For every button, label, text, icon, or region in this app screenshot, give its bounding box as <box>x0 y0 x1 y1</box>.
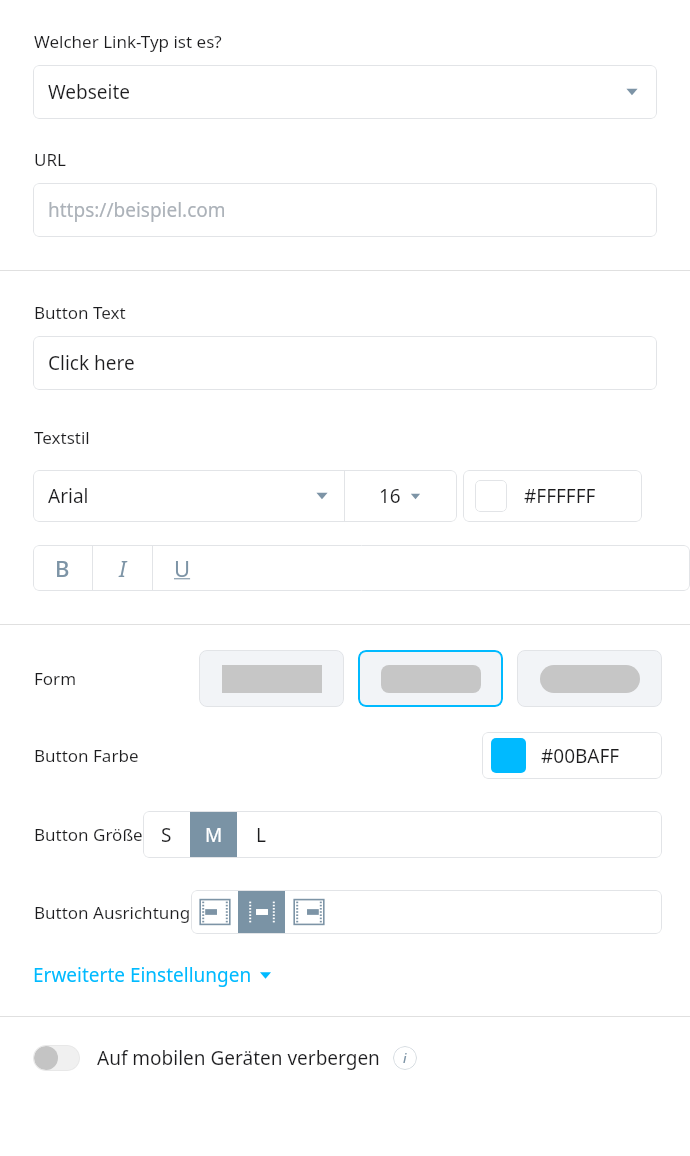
button[interactable]: Arial <box>33 470 344 522</box>
button[interactable]: I <box>93 545 152 591</box>
staticText: M <box>205 822 223 848</box>
staticText: Webseite <box>48 79 623 105</box>
staticText: Welcher Link-Typ ist es? <box>34 30 222 53</box>
button[interactable]: https://beispiel.com <box>33 183 657 237</box>
staticText: Button Farbe <box>34 744 139 767</box>
staticText: I <box>119 553 127 583</box>
button[interactable]: Webseite <box>33 65 657 119</box>
staticText: L <box>256 822 266 848</box>
staticText: https://beispiel.com <box>48 197 226 223</box>
staticText: B <box>55 553 70 583</box>
staticText: i <box>403 1049 407 1067</box>
button[interactable]: 16 <box>345 470 457 522</box>
button[interactable]: Ausrichtung 0 <box>191 890 238 934</box>
button[interactable]: Click here <box>33 336 657 390</box>
staticText: #FFFFFF <box>524 483 596 509</box>
staticText: Button Größe <box>34 823 143 846</box>
button[interactable]: Form 2 <box>517 650 662 707</box>
staticText: Arial <box>48 483 313 509</box>
staticText: Erweiterte Einstellungen <box>33 962 252 988</box>
button[interactable]: L <box>237 811 284 858</box>
button[interactable]: Form 0 <box>199 650 344 707</box>
staticText: Button Ausrichtung <box>34 901 191 924</box>
staticText: Form <box>34 667 77 690</box>
staticText: Auf mobilen Geräten verbergen <box>97 1045 380 1071</box>
button[interactable]: Auf mobilen Geräten verbergen <box>33 1045 80 1071</box>
staticText: Click here <box>48 350 135 376</box>
button[interactable]: Ausrichtung 1 <box>238 890 285 934</box>
staticText: U <box>174 553 191 583</box>
staticText: 16 <box>379 483 401 509</box>
staticText: S <box>161 822 172 848</box>
staticText: URL <box>34 148 66 171</box>
button[interactable]: #FFFFFF <box>463 470 642 522</box>
button[interactable]: S <box>143 811 190 858</box>
button[interactable]: Info <box>393 1046 417 1070</box>
staticText: Button Text <box>34 301 126 324</box>
button[interactable]: Erweiterte Einstellungen <box>33 962 272 988</box>
button[interactable]: U <box>153 545 212 591</box>
button[interactable]: Ausrichtung 2 <box>285 890 332 934</box>
button[interactable]: B <box>33 545 92 591</box>
staticText: Textstil <box>34 426 90 449</box>
button[interactable]: Form 1 <box>358 650 503 707</box>
button[interactable]: M <box>190 811 237 858</box>
staticText: #00BAFF <box>541 743 620 769</box>
button[interactable]: #00BAFF <box>482 732 662 779</box>
